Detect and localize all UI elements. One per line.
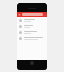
- button[interactable]: Menu: [18, 13, 21, 16]
- button[interactable]: Menu: [17, 12, 47, 17]
- button[interactable]: [17, 23, 47, 29]
- button[interactable]: More options: [44, 14, 46, 16]
- button[interactable]: [17, 35, 47, 41]
- button[interactable]: Search: [22, 13, 43, 16]
- button[interactable]: [17, 29, 47, 35]
- button[interactable]: [17, 17, 47, 23]
